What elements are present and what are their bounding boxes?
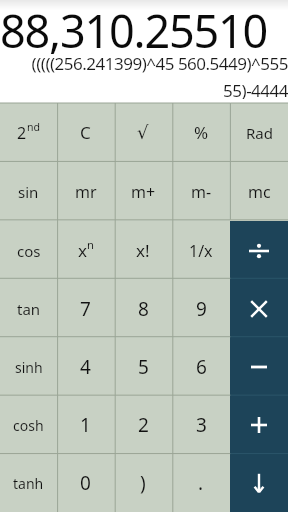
button[interactable]: sin bbox=[0, 162, 57, 221]
staticText: tanh bbox=[13, 474, 44, 493]
staticText: m+ bbox=[131, 181, 156, 203]
staticText: 1 bbox=[80, 412, 91, 438]
staticText: 5 bbox=[138, 354, 149, 380]
button[interactable]: 7 bbox=[57, 280, 114, 338]
button[interactable]: 6 bbox=[172, 338, 230, 396]
staticText: x! bbox=[136, 239, 150, 262]
button[interactable]: tan bbox=[0, 280, 57, 338]
staticText: 9 bbox=[196, 296, 207, 322]
staticText: . bbox=[198, 470, 204, 496]
staticText: 8 bbox=[138, 296, 149, 322]
button[interactable]: 2 bbox=[114, 396, 172, 454]
staticText: √ bbox=[137, 122, 149, 143]
staticText: % bbox=[194, 121, 209, 144]
staticText: 3 bbox=[196, 412, 207, 438]
staticText: Rad bbox=[246, 123, 273, 143]
button[interactable]: Divide bbox=[230, 221, 288, 280]
staticText: 0 bbox=[80, 470, 91, 496]
staticText: 6 bbox=[196, 354, 207, 380]
button[interactable]: 1/x bbox=[172, 221, 230, 280]
button[interactable]: 1 bbox=[57, 396, 114, 454]
button[interactable]: % bbox=[172, 103, 230, 162]
button[interactable]: Add bbox=[230, 396, 288, 454]
button[interactable]: tanh bbox=[0, 454, 57, 512]
button[interactable]: cos bbox=[0, 221, 57, 280]
button[interactable]: 5 bbox=[114, 338, 172, 396]
staticText: C bbox=[80, 121, 91, 144]
staticText: cos bbox=[17, 241, 41, 261]
button[interactable]: 0 bbox=[57, 454, 114, 512]
staticText: m- bbox=[191, 181, 212, 203]
staticText: ) bbox=[140, 470, 146, 496]
staticText: 1/x bbox=[189, 240, 213, 262]
button[interactable]: 3 bbox=[172, 396, 230, 454]
button[interactable]: C bbox=[57, 103, 114, 162]
staticText: 2 bbox=[17, 122, 27, 144]
staticText: 4 bbox=[80, 354, 91, 380]
button[interactable]: ) bbox=[114, 454, 172, 512]
staticText: 2 bbox=[138, 412, 149, 438]
button[interactable]: m+ bbox=[114, 162, 172, 221]
staticText: x bbox=[78, 239, 87, 262]
staticText: n bbox=[87, 237, 94, 252]
button[interactable]: Subtract bbox=[230, 338, 288, 396]
button[interactable]: Multiply bbox=[230, 280, 288, 338]
staticText: sin bbox=[18, 182, 39, 202]
button[interactable]: Equals bbox=[230, 454, 288, 512]
button[interactable]: √ bbox=[114, 103, 172, 162]
staticText: (((((256.241399)^45 560.5449)^555 bbox=[0, 56, 288, 75]
button[interactable]: 2 bbox=[0, 103, 57, 162]
button[interactable]: Rad bbox=[230, 103, 288, 162]
button[interactable]: . bbox=[172, 454, 230, 512]
staticText: cosh bbox=[13, 416, 44, 435]
button[interactable]: mc bbox=[230, 162, 288, 221]
button[interactable]: cosh bbox=[0, 396, 57, 454]
button[interactable]: m- bbox=[172, 162, 230, 221]
button[interactable]: 4 bbox=[57, 338, 114, 396]
staticText: 88,310.25510 bbox=[0, 0, 288, 56]
button[interactable]: mr bbox=[57, 162, 114, 221]
button[interactable]: x! bbox=[114, 221, 172, 280]
staticText: mc bbox=[248, 181, 271, 203]
staticText: nd bbox=[27, 120, 41, 134]
button[interactable]: 9 bbox=[172, 280, 230, 338]
staticText: 7 bbox=[80, 296, 91, 322]
staticText: mr bbox=[75, 181, 97, 203]
staticText: 55)-4444 bbox=[0, 79, 288, 99]
button[interactable]: 8 bbox=[114, 280, 172, 338]
staticText: sinh bbox=[15, 358, 43, 377]
staticText: tan bbox=[17, 299, 41, 319]
button[interactable]: x bbox=[57, 221, 114, 280]
button[interactable]: sinh bbox=[0, 338, 57, 396]
